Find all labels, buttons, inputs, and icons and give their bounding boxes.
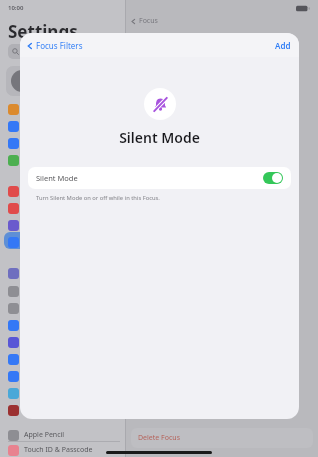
- button[interactable]: Focus Filters: [20, 36, 89, 55]
- staticText: Add: [275, 40, 291, 51]
- staticText: Delete Focus: [138, 433, 181, 443]
- button[interactable]: Silent Mode toggle: [263, 172, 283, 184]
- staticText: Turn Silent Mode on or off while in this…: [36, 194, 160, 202]
- staticText: Search: [22, 48, 38, 55]
- staticText: Silent Mode: [36, 173, 78, 183]
- staticText: Apple Pencil: [24, 430, 65, 440]
- staticText: Focus Filters: [36, 40, 83, 51]
- staticText: Touch ID & Passcode: [24, 445, 93, 455]
- staticText: Focus: [139, 16, 158, 26]
- button[interactable]: Add: [267, 36, 299, 55]
- staticText: Settings: [8, 20, 78, 43]
- staticText: Silent Mode: [119, 128, 200, 147]
- staticText: 10:00: [8, 4, 24, 12]
- button[interactable]: Silent Mode: [28, 167, 291, 189]
